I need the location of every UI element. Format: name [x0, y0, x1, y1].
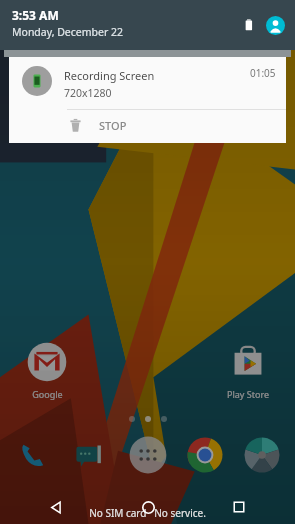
staticText: STOP	[99, 118, 127, 133]
button[interactable]: User profile	[265, 15, 285, 35]
button[interactable]: Photos	[241, 434, 283, 476]
button[interactable]: Recents	[225, 493, 253, 521]
button[interactable]: Back	[42, 493, 70, 521]
staticText: Google	[32, 388, 63, 400]
button[interactable]: Play Store	[211, 338, 285, 402]
button[interactable]: Battery	[241, 17, 257, 33]
staticText: Recording Screen	[64, 68, 155, 83]
button[interactable]: All apps	[127, 434, 169, 476]
button[interactable]: Google	[10, 338, 84, 402]
button[interactable]: Messaging	[69, 434, 111, 476]
staticText: 3:53 AM	[12, 7, 59, 23]
button[interactable]: Chrome	[184, 434, 226, 476]
staticText: No SIM card No service.	[89, 506, 206, 520]
staticText: Play Store	[227, 388, 269, 400]
staticText: 01:05	[250, 66, 276, 80]
button[interactable]: Recording Screen	[9, 57, 286, 143]
button[interactable]: Home	[134, 493, 162, 521]
button[interactable]: STOP	[9, 110, 286, 143]
button[interactable]: Phone	[12, 434, 54, 476]
staticText: Monday, December 22	[12, 25, 124, 39]
staticText: 720x1280	[64, 86, 112, 100]
